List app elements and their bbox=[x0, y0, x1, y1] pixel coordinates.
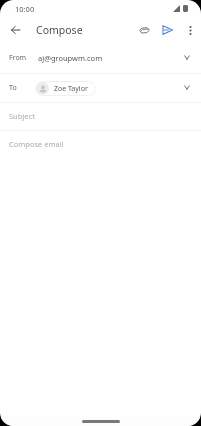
button[interactable]: Expand bbox=[179, 79, 195, 95]
staticText: To bbox=[9, 83, 17, 93]
button[interactable]: Expand bbox=[179, 49, 195, 65]
staticText: Subject bbox=[9, 111, 35, 121]
button[interactable]: Subject bbox=[0, 103, 201, 130]
staticText: Compose bbox=[36, 23, 83, 37]
button[interactable]: Compose email bbox=[0, 131, 201, 159]
button[interactable]: To bbox=[0, 74, 201, 102]
staticText: Compose email bbox=[9, 139, 64, 149]
button[interactable]: From bbox=[0, 43, 201, 73]
button[interactable]: More options bbox=[179, 19, 201, 41]
staticText: 10:00 bbox=[15, 4, 35, 14]
staticText: aj@groupwm.com bbox=[38, 53, 103, 63]
button[interactable]: Back bbox=[4, 19, 26, 41]
staticText: Zoe Taylor bbox=[54, 84, 88, 94]
button[interactable]: Zoe Taylor bbox=[35, 81, 96, 96]
button[interactable]: Send bbox=[156, 19, 178, 41]
button[interactable]: Attach file bbox=[133, 19, 155, 41]
staticText: From bbox=[9, 53, 27, 63]
